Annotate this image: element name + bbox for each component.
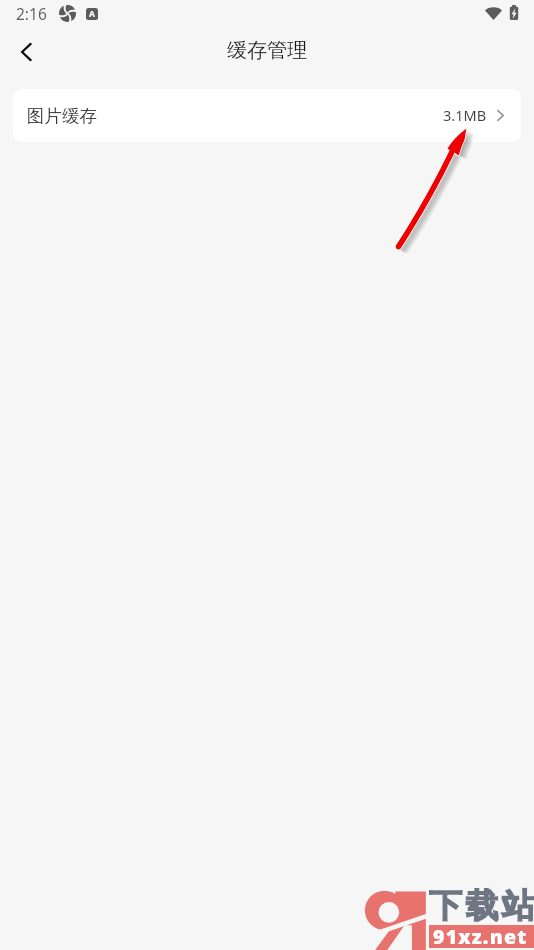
staticText: 3.1MB — [443, 105, 487, 125]
staticText: A — [89, 8, 95, 20]
staticText: 缓存管理 — [227, 38, 307, 63]
staticText: 91xz.net — [433, 923, 528, 946]
staticText: 下载站 — [429, 885, 534, 927]
staticText: 图片缓存 — [27, 105, 97, 127]
staticText: 2:16 — [16, 3, 47, 24]
button[interactable]: 图片缓存 — [13, 89, 521, 142]
button[interactable]: Back — [3, 29, 49, 75]
